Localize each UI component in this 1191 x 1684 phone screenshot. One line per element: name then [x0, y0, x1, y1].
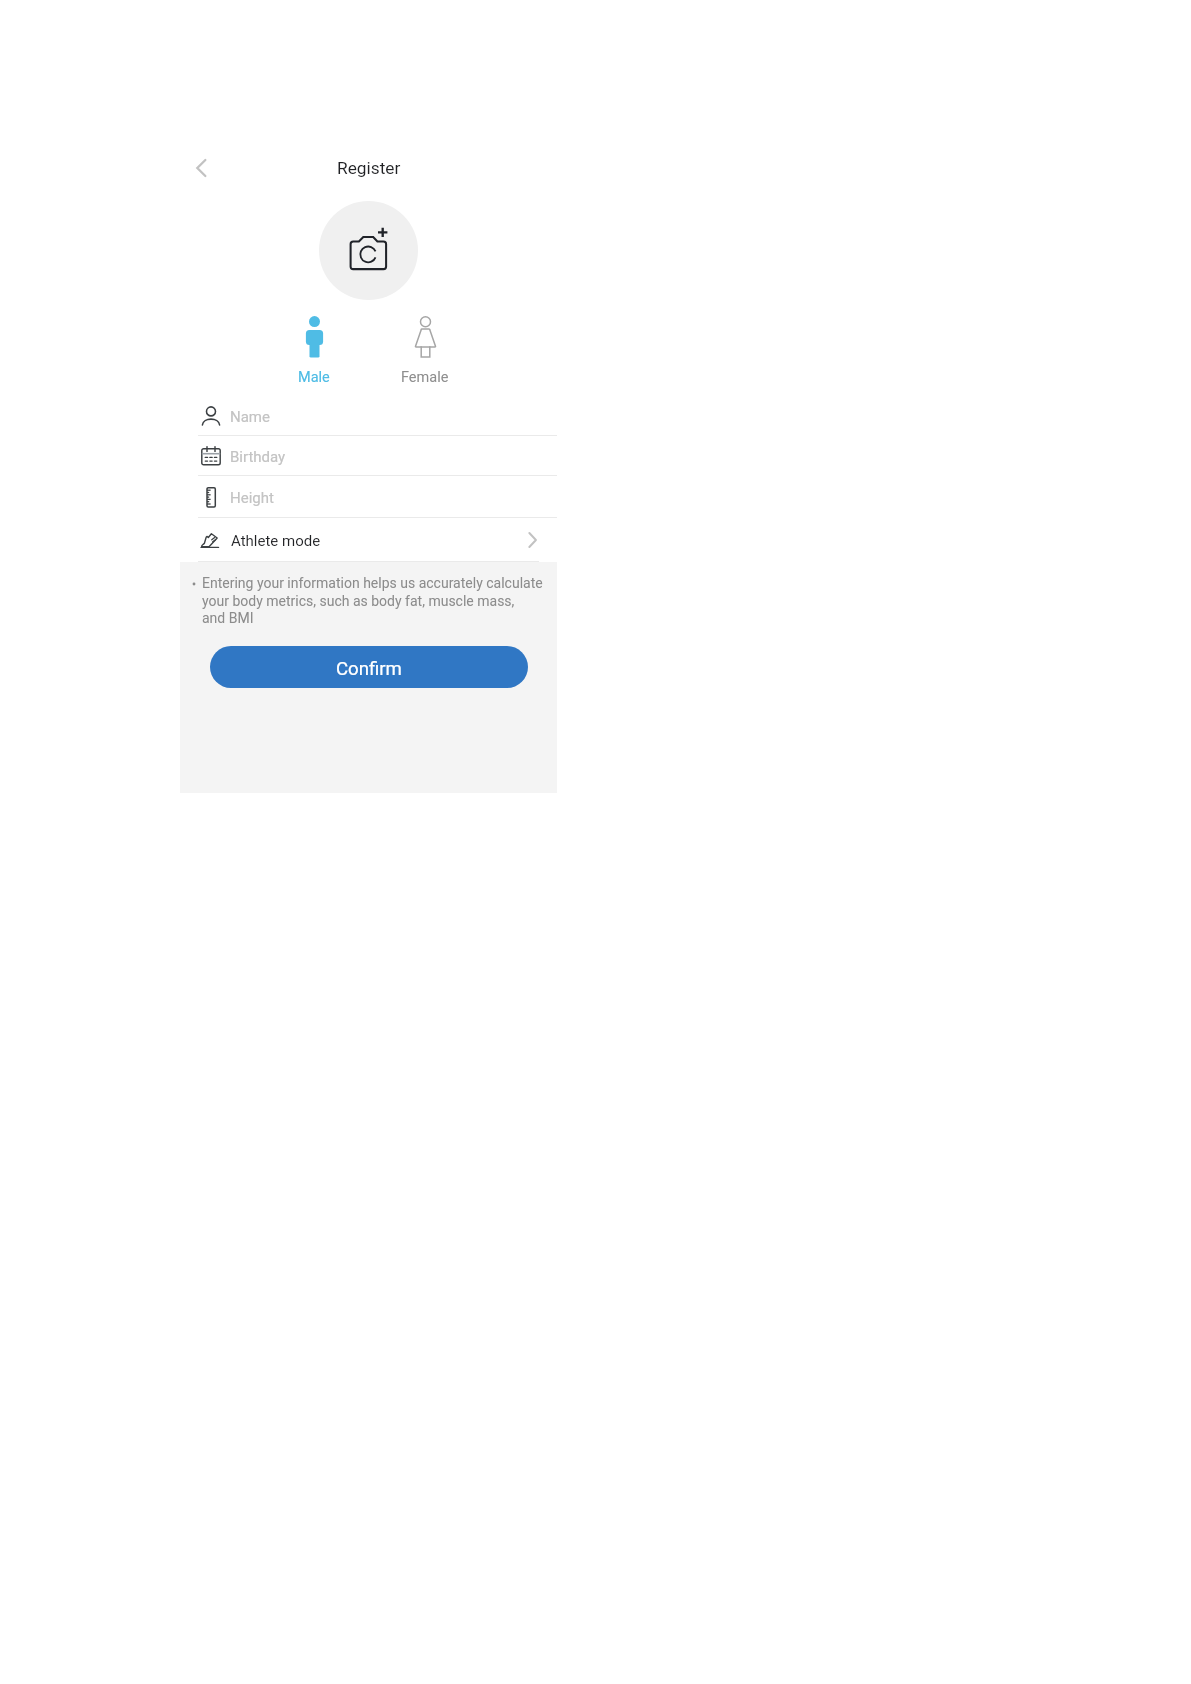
button[interactable]: Add photo — [319, 201, 418, 300]
staticText: Athlete mode — [231, 532, 321, 550]
staticText: Female — [401, 369, 449, 386]
button[interactable]: Back — [177, 144, 225, 192]
button[interactable]: Height — [180, 476, 557, 516]
button[interactable]: Name — [180, 395, 557, 435]
button[interactable]: Confirm — [210, 646, 528, 688]
staticText: Name — [230, 408, 270, 426]
staticText: Confirm — [336, 658, 402, 680]
button[interactable]: Athlete mode — [180, 518, 557, 562]
staticText: Entering your information helps us accur… — [202, 575, 543, 626]
staticText: Height — [230, 489, 274, 507]
button[interactable]: Female — [385, 310, 465, 388]
button[interactable]: Birthday — [180, 435, 557, 475]
staticText: Register — [337, 158, 401, 178]
staticText: Male — [298, 369, 330, 386]
button[interactable]: Male — [274, 310, 354, 388]
staticText: Birthday — [230, 448, 286, 466]
